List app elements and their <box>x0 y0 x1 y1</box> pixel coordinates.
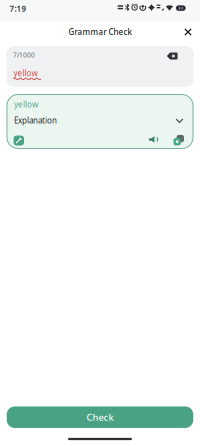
staticText: 7:19 <box>9 3 26 14</box>
button[interactable]: Explanation <box>14 115 186 126</box>
staticText: Check <box>86 411 113 423</box>
staticText: yellow <box>14 99 38 110</box>
staticText: yellow <box>13 68 37 78</box>
staticText: Explanation <box>14 115 57 126</box>
button[interactable]: Check <box>7 406 193 428</box>
button[interactable]: Listen <box>149 136 159 143</box>
button[interactable]: Edit <box>14 135 24 145</box>
staticText: 7/1000 <box>13 50 35 59</box>
staticText: Grammar Check <box>68 26 131 37</box>
button[interactable]: Copy <box>173 134 185 146</box>
button[interactable]: Clear text <box>167 52 178 60</box>
button[interactable]: Close <box>182 26 194 38</box>
